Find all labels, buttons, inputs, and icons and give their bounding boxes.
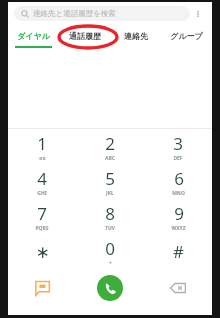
button[interactable]: Send SMS: [8, 269, 76, 307]
staticText: ∗: [35, 242, 50, 262]
staticText: 6: [174, 167, 184, 190]
button[interactable]: 1: [8, 129, 76, 164]
staticText: グループ: [170, 31, 203, 41]
staticText: +: [109, 260, 112, 267]
staticText: 4: [37, 167, 47, 190]
staticText: 通話履歴: [69, 31, 101, 41]
staticText: oo: [39, 155, 46, 162]
button[interactable]: 7: [8, 199, 76, 234]
staticText: 連絡先と通話履歴を検索: [33, 9, 116, 18]
button[interactable]: Backspace: [144, 269, 212, 307]
button[interactable]: グループ: [161, 25, 212, 46]
button[interactable]: 連絡先: [110, 25, 161, 46]
staticText: PQRS: [35, 225, 49, 232]
staticText: GHI: [37, 190, 47, 197]
staticText: 9: [174, 202, 184, 225]
staticText: 5: [105, 167, 115, 190]
button[interactable]: 連絡先と通話履歴を検索: [14, 6, 190, 21]
button[interactable]: 0: [76, 234, 144, 269]
staticText: ABC: [105, 155, 115, 162]
staticText: 7: [37, 202, 47, 225]
staticText: JKL: [106, 190, 114, 197]
other: Call: [76, 269, 144, 307]
button[interactable]: 3: [144, 129, 212, 164]
button[interactable]: 5: [76, 164, 144, 199]
staticText: WXYZ: [171, 225, 186, 232]
button[interactable]: 2: [76, 129, 144, 164]
staticText: 2: [105, 132, 115, 155]
button[interactable]: 通話履歴: [59, 25, 110, 46]
button[interactable]: 9: [144, 199, 212, 234]
staticText: 8: [105, 202, 115, 225]
button[interactable]: 4: [8, 164, 76, 199]
button[interactable]: More options: [190, 2, 206, 25]
staticText: 1: [37, 132, 47, 155]
button[interactable]: 6: [144, 164, 212, 199]
staticText: MNO: [172, 190, 185, 197]
staticText: 連絡先: [124, 31, 148, 41]
staticText: ダイヤル: [17, 31, 50, 41]
button[interactable]: 8: [76, 199, 144, 234]
staticText: #: [173, 240, 184, 263]
button[interactable]: #: [144, 234, 212, 269]
button[interactable]: ∗: [8, 234, 76, 269]
button[interactable]: [97, 275, 123, 301]
staticText: DEF: [173, 155, 183, 162]
staticText: 0: [105, 237, 115, 260]
staticText: TUV: [105, 225, 115, 232]
button[interactable]: ダイヤル: [8, 25, 59, 46]
staticText: 3: [173, 132, 183, 155]
